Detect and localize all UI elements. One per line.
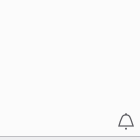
button[interactable]: Notifications [110, 105, 140, 137]
